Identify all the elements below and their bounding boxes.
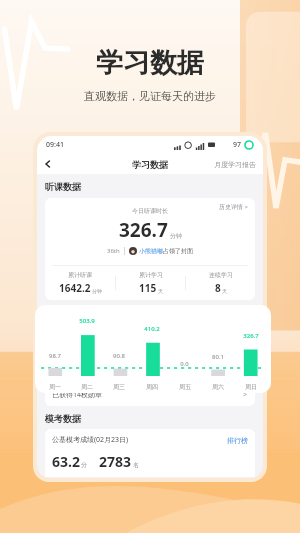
staticText: 名: [133, 461, 139, 469]
staticText: 小熊猫嘟: [139, 247, 163, 255]
staticText: 326.7: [243, 332, 259, 340]
staticText: 90.8: [113, 352, 125, 360]
button[interactable]: 排行榜: [227, 436, 248, 445]
staticText: 今日听课时长: [132, 207, 168, 215]
staticText: 1642.2: [59, 281, 91, 295]
staticText: 周一: [49, 383, 61, 391]
button[interactable]: 返回: [37, 154, 59, 174]
staticText: 学习数据: [132, 159, 168, 170]
staticText: 学习数据: [96, 46, 204, 80]
button[interactable]: 已获得14枚勋章: [45, 384, 255, 406]
staticText: 0.0: [180, 360, 189, 368]
staticText: 周二: [81, 383, 93, 391]
staticText: 直观数据，见证每天的进步: [84, 89, 216, 103]
staticText: 公基模考成绩(02月23日): [52, 435, 129, 445]
staticText: 周五: [179, 383, 191, 391]
staticText: 98.7: [49, 352, 61, 360]
button[interactable]: 历史详情 >: [219, 203, 248, 211]
staticText: 分: [81, 461, 87, 469]
staticText: 09:41: [46, 140, 64, 150]
staticText: 周日: [245, 383, 257, 391]
staticText: 已获得14枚勋章: [52, 390, 103, 400]
staticText: 97: [233, 140, 242, 150]
staticText: 8: [215, 281, 221, 295]
staticText: 听课数据: [45, 181, 81, 192]
button[interactable]: 36th: [107, 247, 193, 255]
staticText: 天: [222, 288, 227, 294]
staticText: 连续学习: [209, 271, 233, 279]
staticText: 累计学习: [139, 271, 163, 279]
staticText: 周四: [146, 383, 158, 391]
button[interactable]: 月度学习报告: [214, 160, 263, 169]
staticText: 周三: [113, 383, 125, 391]
staticText: 115: [139, 281, 157, 295]
staticText: 分钟: [170, 232, 182, 240]
staticText: 占领了封面: [163, 247, 193, 255]
staticText: >: [243, 390, 248, 400]
staticText: 天: [158, 288, 163, 294]
staticText: 410.2: [144, 325, 160, 333]
staticText: 分钟: [92, 288, 102, 294]
staticText: 2783: [99, 452, 132, 471]
staticText: 326.7: [119, 217, 168, 243]
staticText: 503.9: [79, 317, 95, 325]
staticText: 累计听课: [68, 271, 92, 279]
staticText: 80.1: [212, 353, 224, 361]
staticText: 周六: [212, 383, 224, 391]
staticText: 模考数据: [45, 413, 81, 424]
staticText: 36th: [107, 247, 120, 255]
staticText: 63.2: [52, 452, 80, 471]
